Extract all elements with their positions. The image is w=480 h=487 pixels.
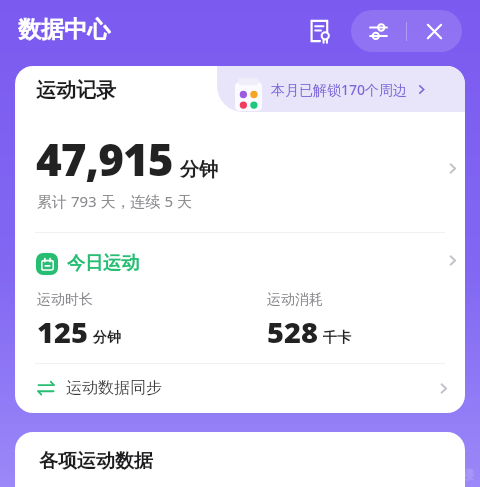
staticText: 数据中心 <box>18 15 110 44</box>
staticText: 125 <box>37 312 88 351</box>
staticText: 各项运动数据 <box>39 449 153 473</box>
button[interactable]: 47,915 <box>15 112 465 232</box>
staticText: 运动记录 <box>36 78 116 103</box>
staticText: 运动数据同步 <box>66 378 162 398</box>
staticText: 运动消耗 <box>267 291 323 309</box>
staticText: 累计 793 天，连续 5 天 <box>37 191 192 211</box>
staticText: 47,915 <box>36 129 173 189</box>
button[interactable]: 运动数据同步 <box>15 364 465 412</box>
staticText: 千卡 <box>323 329 351 347</box>
button[interactable]: Close <box>407 10 462 52</box>
button[interactable]: Filter settings <box>351 10 406 52</box>
staticText: 今日运动 <box>67 252 139 275</box>
staticText: 楼 <box>462 467 474 482</box>
staticText: 分钟 <box>93 329 121 347</box>
button[interactable]: 今日运动 <box>15 233 465 363</box>
staticText: 本月已解锁170个周边 <box>271 80 408 99</box>
button[interactable]: Certificate <box>300 11 340 51</box>
button[interactable]: 本月已解锁170个周边 <box>217 66 465 112</box>
staticText: 运动时长 <box>37 291 93 309</box>
button[interactable]: 各项运动数据 <box>15 432 465 487</box>
staticText: 分钟 <box>180 158 218 182</box>
staticText: 528 <box>267 312 318 351</box>
